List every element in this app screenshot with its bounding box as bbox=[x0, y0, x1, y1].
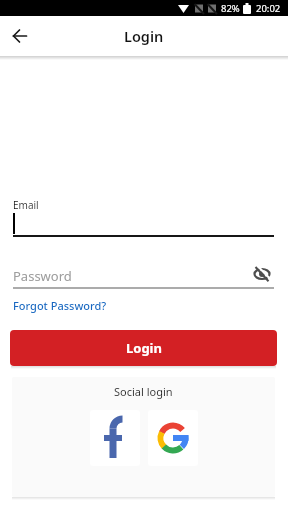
staticText: 82% bbox=[221, 2, 240, 15]
staticText: Forgot Password? bbox=[13, 298, 107, 313]
staticText: Login bbox=[126, 339, 162, 357]
staticText: Login bbox=[124, 26, 164, 46]
button[interactable] bbox=[90, 410, 140, 466]
button[interactable] bbox=[8, 24, 32, 48]
staticText: Email bbox=[13, 198, 39, 212]
button[interactable] bbox=[250, 262, 274, 286]
staticText: Password bbox=[13, 267, 72, 285]
button[interactable] bbox=[148, 410, 198, 466]
staticText: Social login bbox=[114, 384, 173, 399]
staticText: 20:02 bbox=[256, 2, 281, 15]
button[interactable]: Login bbox=[10, 330, 277, 366]
button[interactable]: Forgot Password? bbox=[10, 295, 110, 316]
